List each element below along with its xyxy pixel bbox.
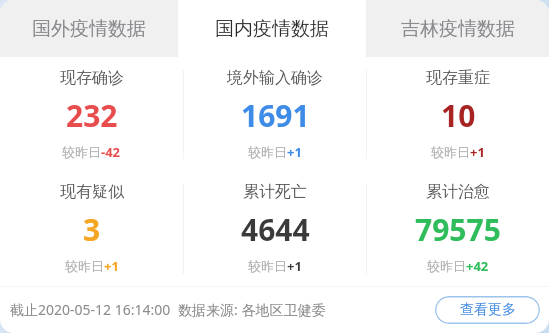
staticText: 4644	[241, 209, 310, 250]
staticText: 现存重症	[426, 68, 490, 88]
staticText: 数据来源: 各地区卫健委	[178, 300, 326, 319]
staticText: 较昨日+1	[431, 143, 485, 161]
button[interactable]: 现有疑似	[0, 171, 183, 286]
button[interactable]: 国内疫情数据	[178, 0, 366, 57]
button[interactable]: 现存确诊	[0, 57, 183, 171]
staticText: 累计死亡	[243, 182, 307, 202]
staticText: 较昨日-42	[62, 143, 121, 161]
button[interactable]: 累计治愈	[367, 171, 549, 286]
button[interactable]: 吉林疫情数据	[366, 0, 549, 57]
staticText: 累计治愈	[426, 182, 490, 202]
staticText: 国外疫情数据	[32, 17, 146, 41]
button[interactable]: 境外输入确诊	[184, 57, 366, 171]
staticText: 较昨日+42	[427, 257, 489, 275]
staticText: 1691	[241, 95, 310, 136]
button[interactable]: 国外疫情数据	[0, 0, 178, 57]
button[interactable]: 现存重症	[367, 57, 549, 171]
staticText: 境外输入确诊	[227, 68, 323, 88]
staticText: 截止2020-05-12 16:14:00	[10, 300, 171, 319]
staticText: 3	[83, 209, 101, 250]
staticText: 232	[66, 95, 118, 136]
staticText: 较昨日+1	[248, 257, 302, 275]
staticText: 较昨日+1	[248, 143, 302, 161]
staticText: 现存确诊	[60, 68, 124, 88]
staticText: 查看更多	[460, 301, 516, 319]
staticText: 现有疑似	[60, 182, 124, 202]
button[interactable]: 累计死亡	[184, 171, 366, 286]
staticText: 国内疫情数据	[215, 17, 329, 41]
staticText: 79575	[415, 209, 501, 250]
staticText: 10	[441, 95, 476, 136]
staticText: 吉林疫情数据	[401, 17, 515, 41]
button[interactable]: 查看更多	[435, 296, 540, 324]
staticText: 较昨日+1	[65, 257, 119, 275]
